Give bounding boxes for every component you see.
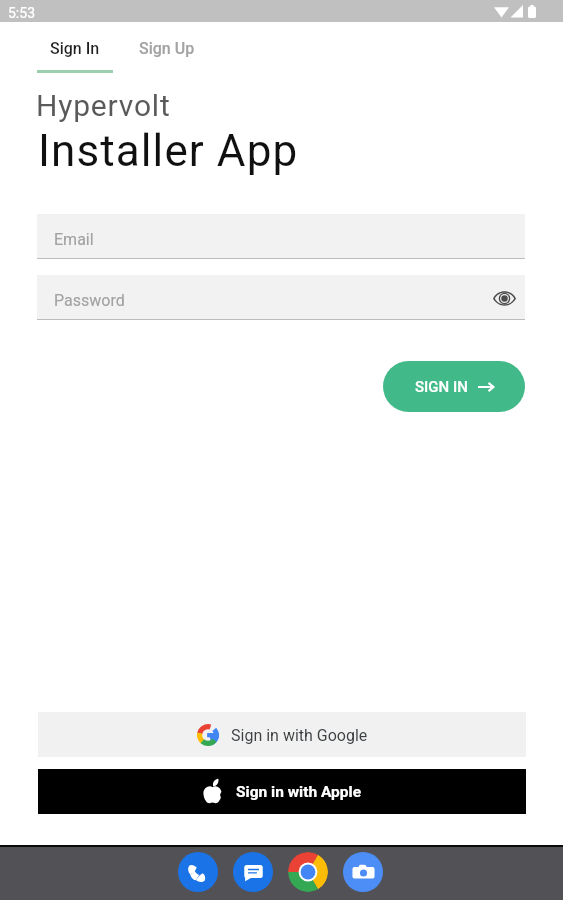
button[interactable]: Chrome xyxy=(288,852,328,892)
button[interactable]: Email xyxy=(37,214,525,258)
button[interactable]: Sign in with Apple xyxy=(38,769,526,814)
button[interactable]: Password xyxy=(37,275,525,319)
staticText: 5:53 xyxy=(8,5,35,21)
button[interactable]: Sign In xyxy=(37,27,113,73)
staticText: Sign Up xyxy=(139,39,195,58)
staticText: Sign in with Google xyxy=(231,726,368,745)
button[interactable]: Phone xyxy=(178,852,218,892)
staticText: Sign In xyxy=(50,39,100,58)
button[interactable]: Show password xyxy=(490,284,518,312)
button[interactable]: Camera xyxy=(343,852,383,892)
button[interactable]: Sign in with Google xyxy=(38,712,526,757)
button[interactable]: SIGN IN xyxy=(383,361,525,412)
staticText: Email xyxy=(54,230,94,249)
staticText: Sign in with Apple xyxy=(236,783,362,801)
button[interactable]: Messages xyxy=(233,852,273,892)
staticText: Hypervolt xyxy=(36,88,171,123)
staticText: Password xyxy=(54,291,125,310)
staticText: SIGN IN xyxy=(415,378,468,396)
button[interactable]: Sign Up xyxy=(127,27,207,70)
staticText: Installer App xyxy=(38,125,299,177)
